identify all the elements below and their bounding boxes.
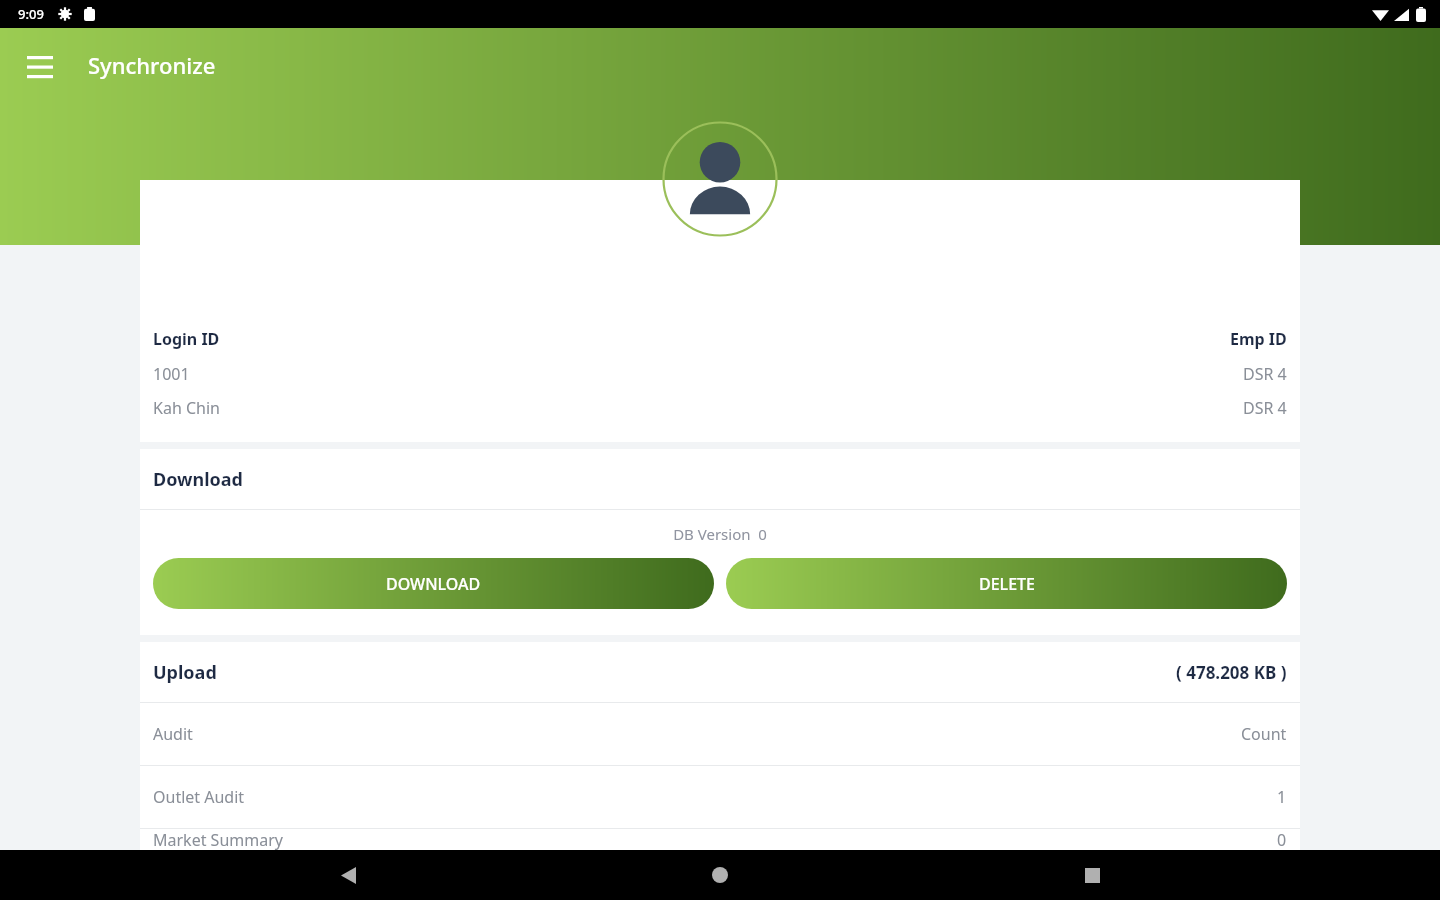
button[interactable]: Market Summary	[140, 829, 1300, 850]
staticText: 1001	[153, 363, 190, 385]
staticText: Login ID	[153, 328, 220, 350]
staticText: Synchronize	[88, 50, 216, 80]
staticText: Audit	[153, 723, 193, 745]
staticText: DELETE	[979, 573, 1035, 595]
staticText: 0	[1277, 829, 1287, 850]
staticText: DSR 4	[1243, 397, 1287, 419]
staticText: DSR 4	[1243, 363, 1287, 385]
button[interactable]: DOWNLOAD	[153, 558, 714, 609]
staticText: Kah Chin	[153, 397, 220, 419]
button[interactable]: Recent apps	[1068, 851, 1116, 899]
button[interactable]: Back	[324, 851, 372, 899]
button[interactable]: Outlet Audit	[140, 766, 1300, 828]
button[interactable]: DELETE	[726, 558, 1287, 609]
button[interactable]: Audit	[140, 703, 1300, 765]
staticText: Emp ID	[1230, 328, 1287, 350]
button[interactable]: Open navigation menu	[14, 39, 66, 91]
staticText: 9:09	[18, 5, 44, 23]
staticText: 1	[1277, 786, 1287, 808]
staticText: Market Summary	[153, 829, 283, 850]
staticText: Download	[153, 467, 243, 492]
staticText: Upload	[153, 660, 217, 685]
staticText: Count	[1241, 723, 1287, 745]
button[interactable]: Home	[696, 851, 744, 899]
staticText: Outlet Audit	[153, 786, 245, 808]
staticText: DOWNLOAD	[386, 573, 481, 595]
staticText: DB Version 0	[140, 524, 1300, 544]
staticText: ( 478.208 KB )	[1176, 661, 1287, 684]
